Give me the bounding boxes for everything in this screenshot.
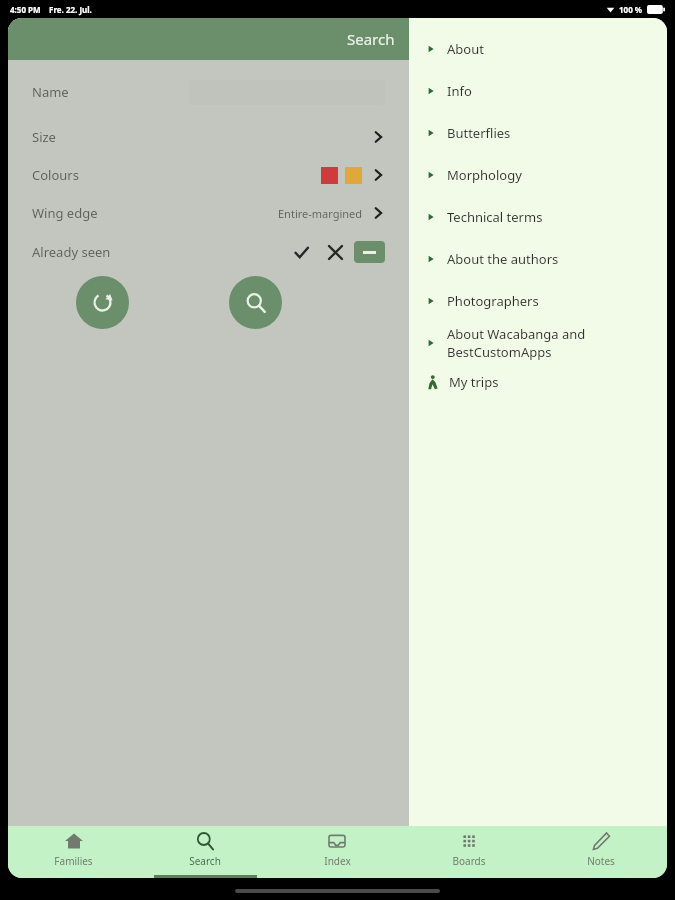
- button[interactable]: Notes: [535, 826, 667, 878]
- staticText: About: [447, 40, 484, 58]
- staticText: 100 %: [619, 4, 643, 15]
- button[interactable]: Search: [229, 276, 282, 329]
- staticText: Wing edge: [32, 204, 98, 222]
- staticText: 4:50 PM: [10, 4, 41, 15]
- button[interactable]: Boards: [403, 826, 535, 878]
- staticText: Index: [324, 854, 351, 868]
- button[interactable]: Technical terms: [425, 196, 659, 238]
- staticText: About the authors: [447, 250, 559, 268]
- staticText: Search: [347, 29, 395, 49]
- button[interactable]: Butterflies: [425, 112, 659, 154]
- button[interactable]: Info: [425, 70, 659, 112]
- button[interactable]: About the authors: [425, 238, 659, 280]
- staticText: Boards: [452, 854, 486, 868]
- staticText: Info: [447, 82, 472, 100]
- staticText: Name: [32, 83, 69, 101]
- button[interactable]: Search: [139, 826, 271, 878]
- button[interactable]: About Wacabanga and BestCustomApps: [425, 322, 659, 364]
- button[interactable]: Families: [8, 826, 139, 878]
- button[interactable]: Morphology: [425, 154, 659, 196]
- staticText: Technical terms: [447, 208, 543, 226]
- button[interactable]: Not seen: [321, 238, 349, 266]
- button[interactable]: My trips: [425, 364, 667, 400]
- button[interactable]: Reset: [76, 276, 129, 329]
- button[interactable]: Photographers: [425, 280, 659, 322]
- staticText: Butterflies: [447, 124, 511, 142]
- staticText: Size: [32, 128, 56, 146]
- staticText: Families: [54, 854, 93, 868]
- button[interactable]: Wing edge: [32, 194, 385, 232]
- staticText: Fre. 22. Jul.: [49, 4, 92, 15]
- staticText: Already seen: [32, 243, 111, 261]
- button[interactable]: Seen: [287, 238, 315, 266]
- staticText: Entire-margined: [278, 206, 363, 221]
- staticText: My trips: [449, 373, 499, 391]
- staticText: Morphology: [447, 166, 522, 184]
- button[interactable]: About: [425, 28, 659, 70]
- button[interactable]: Size: [32, 118, 385, 156]
- button[interactable]: Index: [271, 826, 403, 878]
- button[interactable]: Colours: [32, 156, 385, 194]
- staticText: Search: [189, 854, 221, 868]
- staticText: Photographers: [447, 292, 539, 310]
- staticText: About Wacabanga and BestCustomApps: [447, 325, 586, 361]
- staticText: Notes: [587, 854, 615, 868]
- staticText: Colours: [32, 166, 79, 184]
- button[interactable]: Name: [32, 74, 385, 110]
- button[interactable]: Any: [354, 241, 385, 263]
